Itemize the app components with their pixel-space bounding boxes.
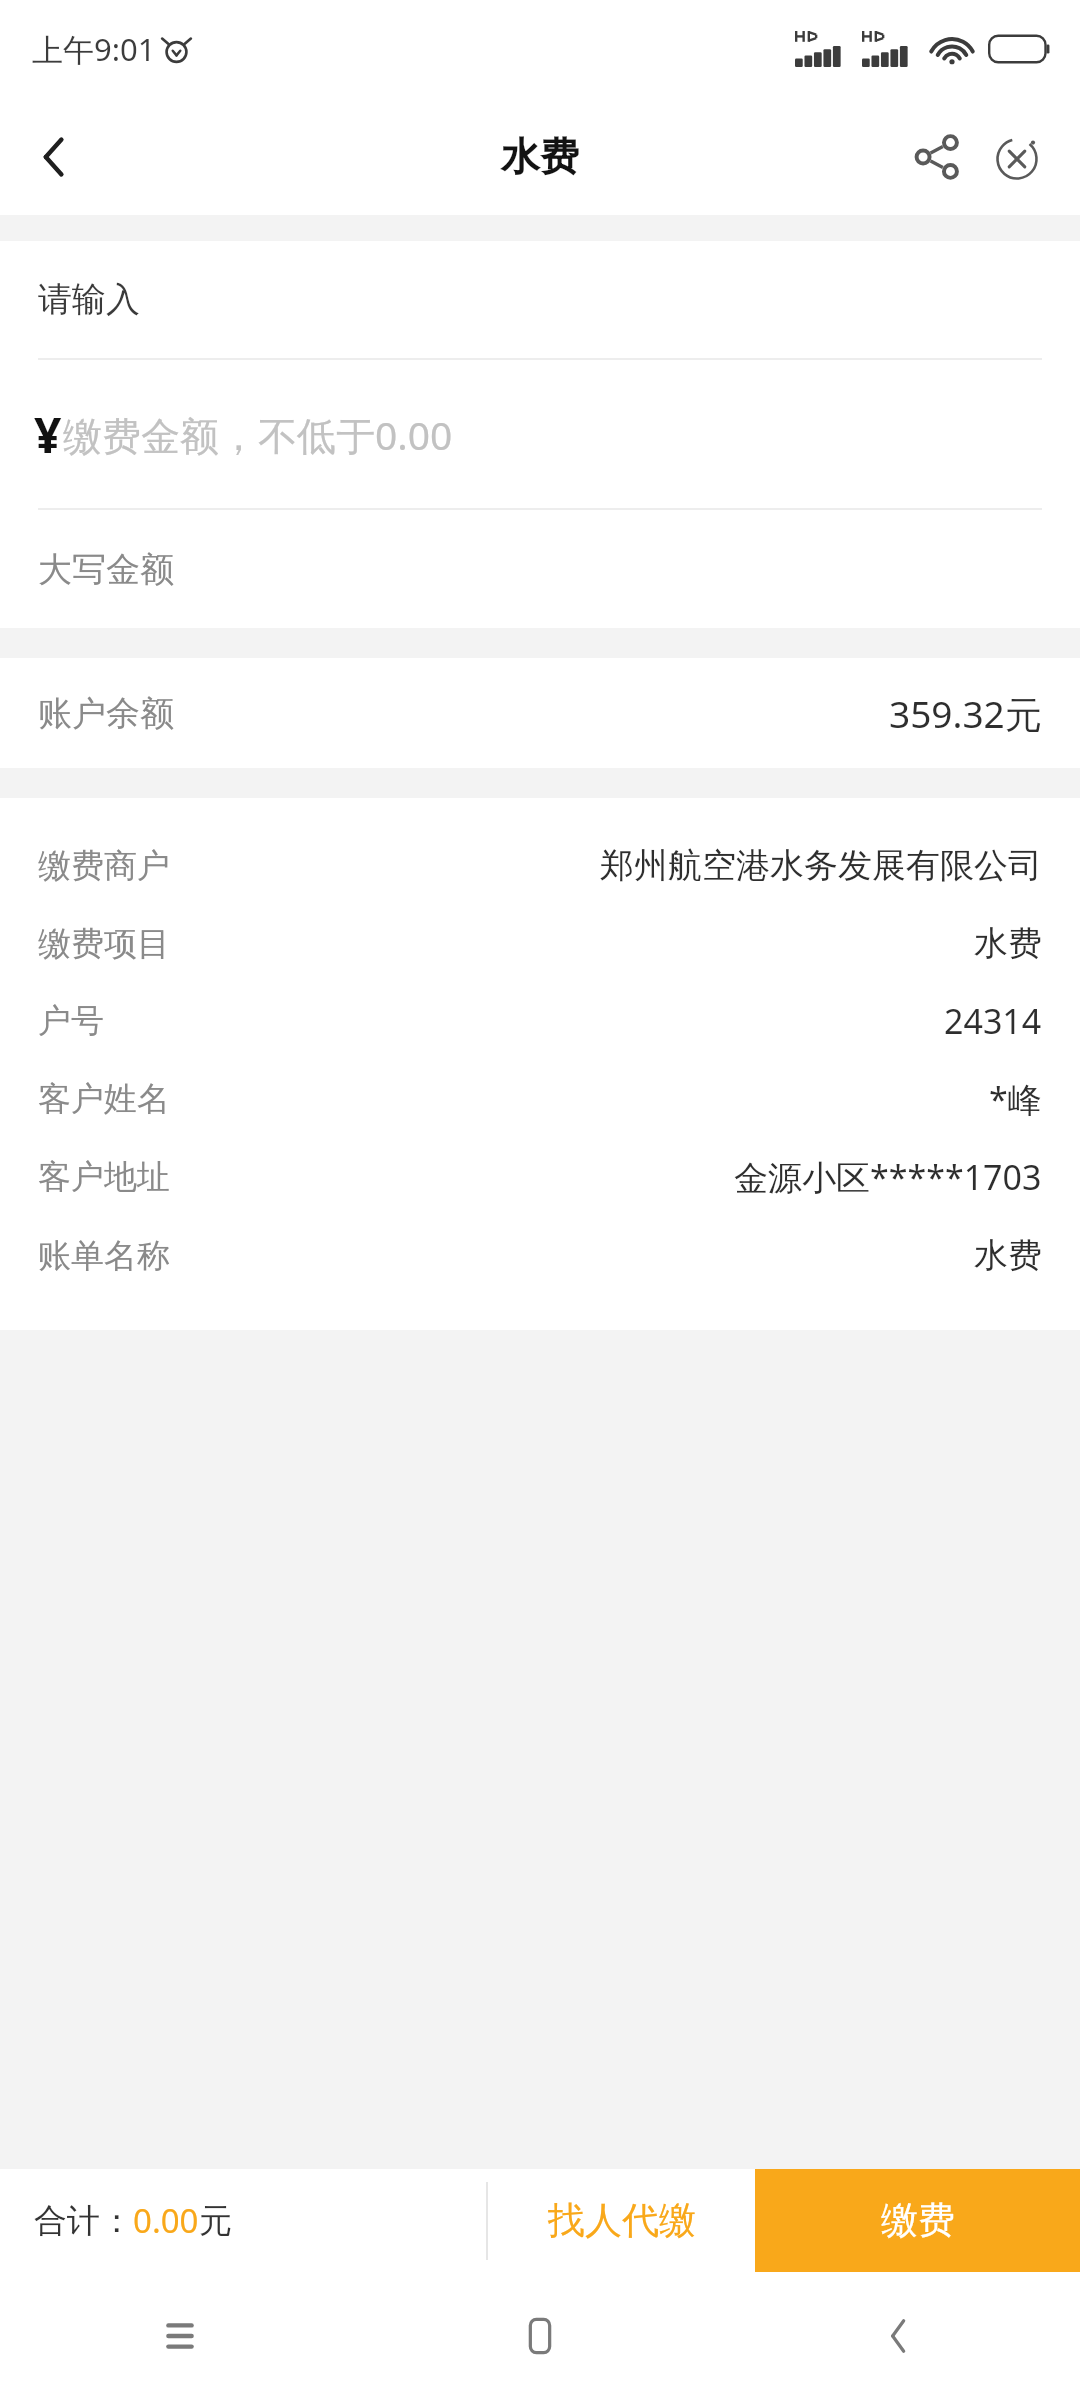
staticText: 郑州航空港水务发展有限公司 [600, 844, 1042, 887]
staticText: 缴费金额，不低于0.00 [63, 408, 453, 461]
button[interactable]: 主页 [360, 2272, 720, 2400]
staticText: 账单名称 [38, 1235, 170, 1277]
button[interactable]: 返回 [14, 116, 96, 198]
button[interactable]: 找人代缴 [488, 2169, 755, 2272]
staticText: 大写金额 [38, 548, 174, 591]
staticText: 359.32元 [889, 688, 1042, 739]
staticText: 缴费 [881, 2197, 955, 2244]
button[interactable]: 缴费 [755, 2169, 1080, 2272]
staticText: 金源小区*****1703 [734, 1154, 1042, 1200]
staticText: 账户余额 [38, 692, 174, 735]
button[interactable]: 最近任务 [0, 2272, 360, 2400]
staticText: 客户姓名 [38, 1078, 170, 1120]
staticText: 水费 [974, 1234, 1042, 1277]
button[interactable]: 分享 [896, 116, 978, 198]
button[interactable]: 关闭 [978, 116, 1060, 198]
staticText: 客户地址 [38, 1156, 170, 1198]
staticText: 元 [199, 2200, 232, 2242]
staticText: ¥ [34, 402, 62, 467]
staticText: 请输入 [38, 278, 140, 321]
button[interactable]: 返回 [720, 2272, 1080, 2400]
staticText: 上午9:01 [32, 28, 156, 70]
staticText: 0.00 [133, 2198, 199, 2243]
staticText: 缴费商户 [38, 845, 170, 887]
staticText: 合计： [34, 2200, 133, 2242]
staticText: 水费 [974, 922, 1042, 965]
staticText: *峰 [989, 1076, 1042, 1122]
staticText: 户号 [38, 1000, 104, 1042]
staticText: 24314 [944, 998, 1042, 1044]
staticText: 缴费项目 [38, 923, 170, 965]
staticText: 找人代缴 [548, 2197, 696, 2244]
staticText: 水费 [501, 132, 579, 181]
